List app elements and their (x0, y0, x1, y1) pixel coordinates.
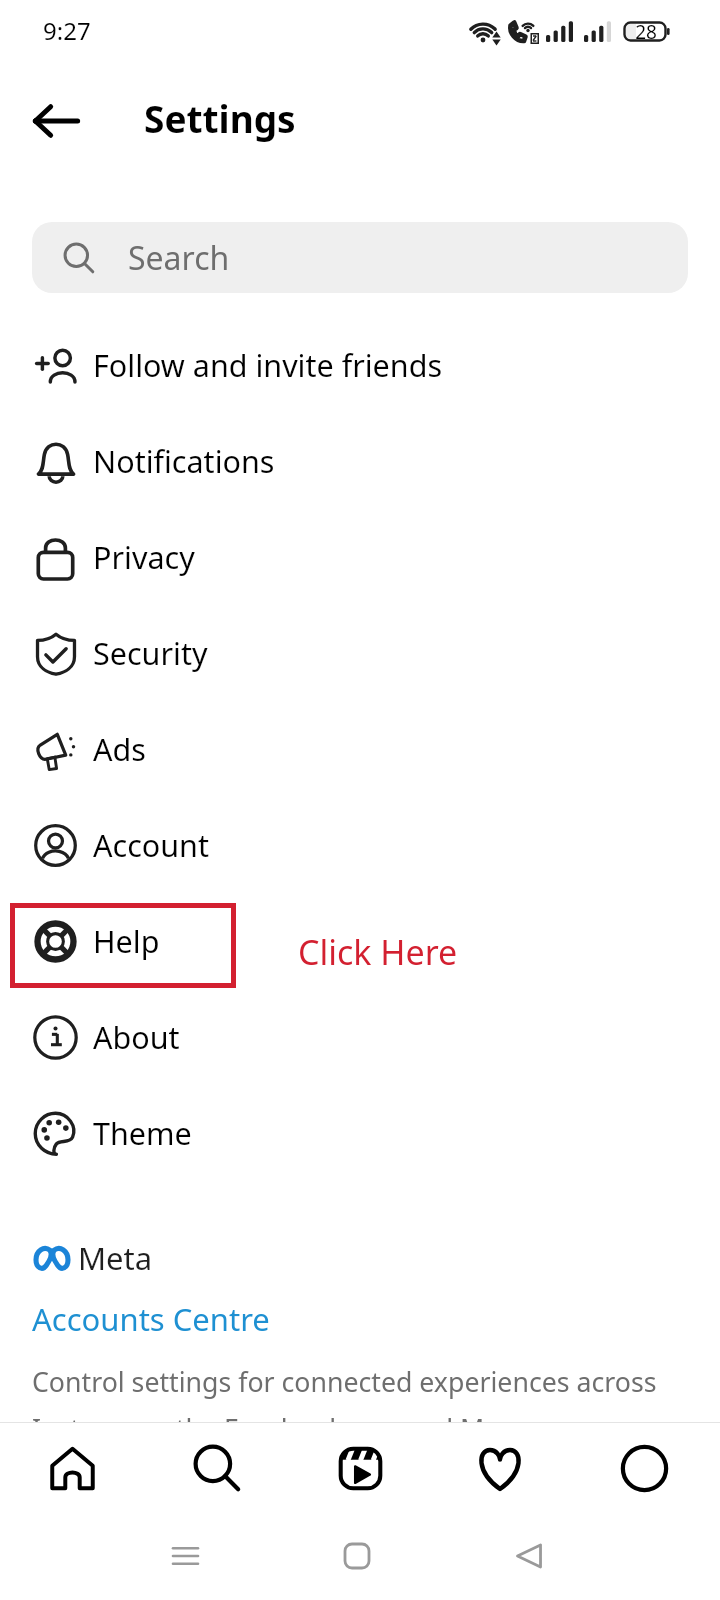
button[interactable]: Back (21, 86, 91, 156)
button[interactable]: Home (332, 1531, 382, 1581)
button[interactable]: Follow and invite friends (0, 317, 720, 413)
button[interactable]: About (0, 989, 720, 1085)
staticText: Ads (93, 728, 146, 770)
button[interactable]: Activity (432, 1422, 576, 1514)
staticText: About (93, 1016, 180, 1058)
staticText: Click Here (298, 929, 458, 975)
button[interactable]: Back (504, 1531, 554, 1581)
staticText: Meta (78, 1237, 153, 1279)
staticText: Notifications (93, 440, 275, 482)
button[interactable]: Search (32, 222, 688, 293)
staticText: Security (93, 632, 208, 674)
staticText: Account (93, 824, 209, 866)
button[interactable]: Reels (288, 1422, 432, 1514)
button[interactable]: Help (0, 893, 720, 989)
staticText: 28 (632, 19, 660, 45)
staticText: Theme (93, 1112, 192, 1154)
button[interactable]: Theme (0, 1085, 720, 1181)
staticText: Help (93, 920, 160, 962)
button[interactable]: Notifications (0, 413, 720, 509)
button[interactable]: Ads (0, 701, 720, 797)
button[interactable]: Profile (576, 1422, 720, 1514)
staticText: Search (128, 236, 230, 280)
button[interactable]: Account (0, 797, 720, 893)
staticText: 9:27 (43, 14, 91, 47)
button[interactable]: Accounts Centre (32, 1298, 270, 1340)
button[interactable]: Recents (160, 1531, 210, 1581)
staticText: Settings (144, 93, 296, 143)
button[interactable]: Search (144, 1422, 288, 1514)
button[interactable]: Privacy (0, 509, 720, 605)
staticText: Control settings for connected experienc… (32, 1363, 672, 1447)
button[interactable]: Security (0, 605, 720, 701)
staticText: Follow and invite friends (93, 344, 443, 386)
staticText: Privacy (93, 536, 195, 578)
button[interactable]: Home (0, 1422, 144, 1514)
